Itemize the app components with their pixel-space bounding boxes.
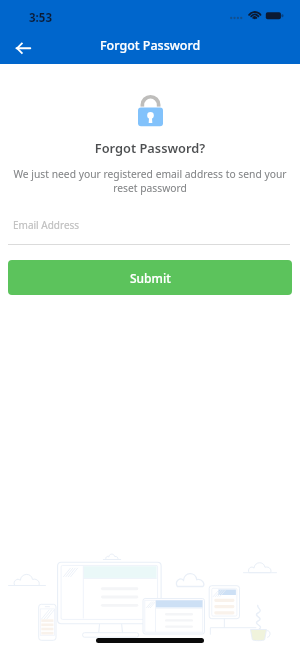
staticText: Email Address: [13, 218, 80, 232]
staticText: Forgot Password?: [0, 139, 300, 156]
staticText: We just need your registered email addre…: [13, 167, 287, 195]
button[interactable]: Submit: [8, 260, 292, 295]
button[interactable]: Email Address: [8, 214, 290, 236]
staticText: Forgot Password: [100, 37, 201, 54]
button[interactable]: Back: [9, 28, 37, 56]
staticText: 3:53: [29, 10, 52, 25]
staticText: Submit: [130, 270, 171, 286]
